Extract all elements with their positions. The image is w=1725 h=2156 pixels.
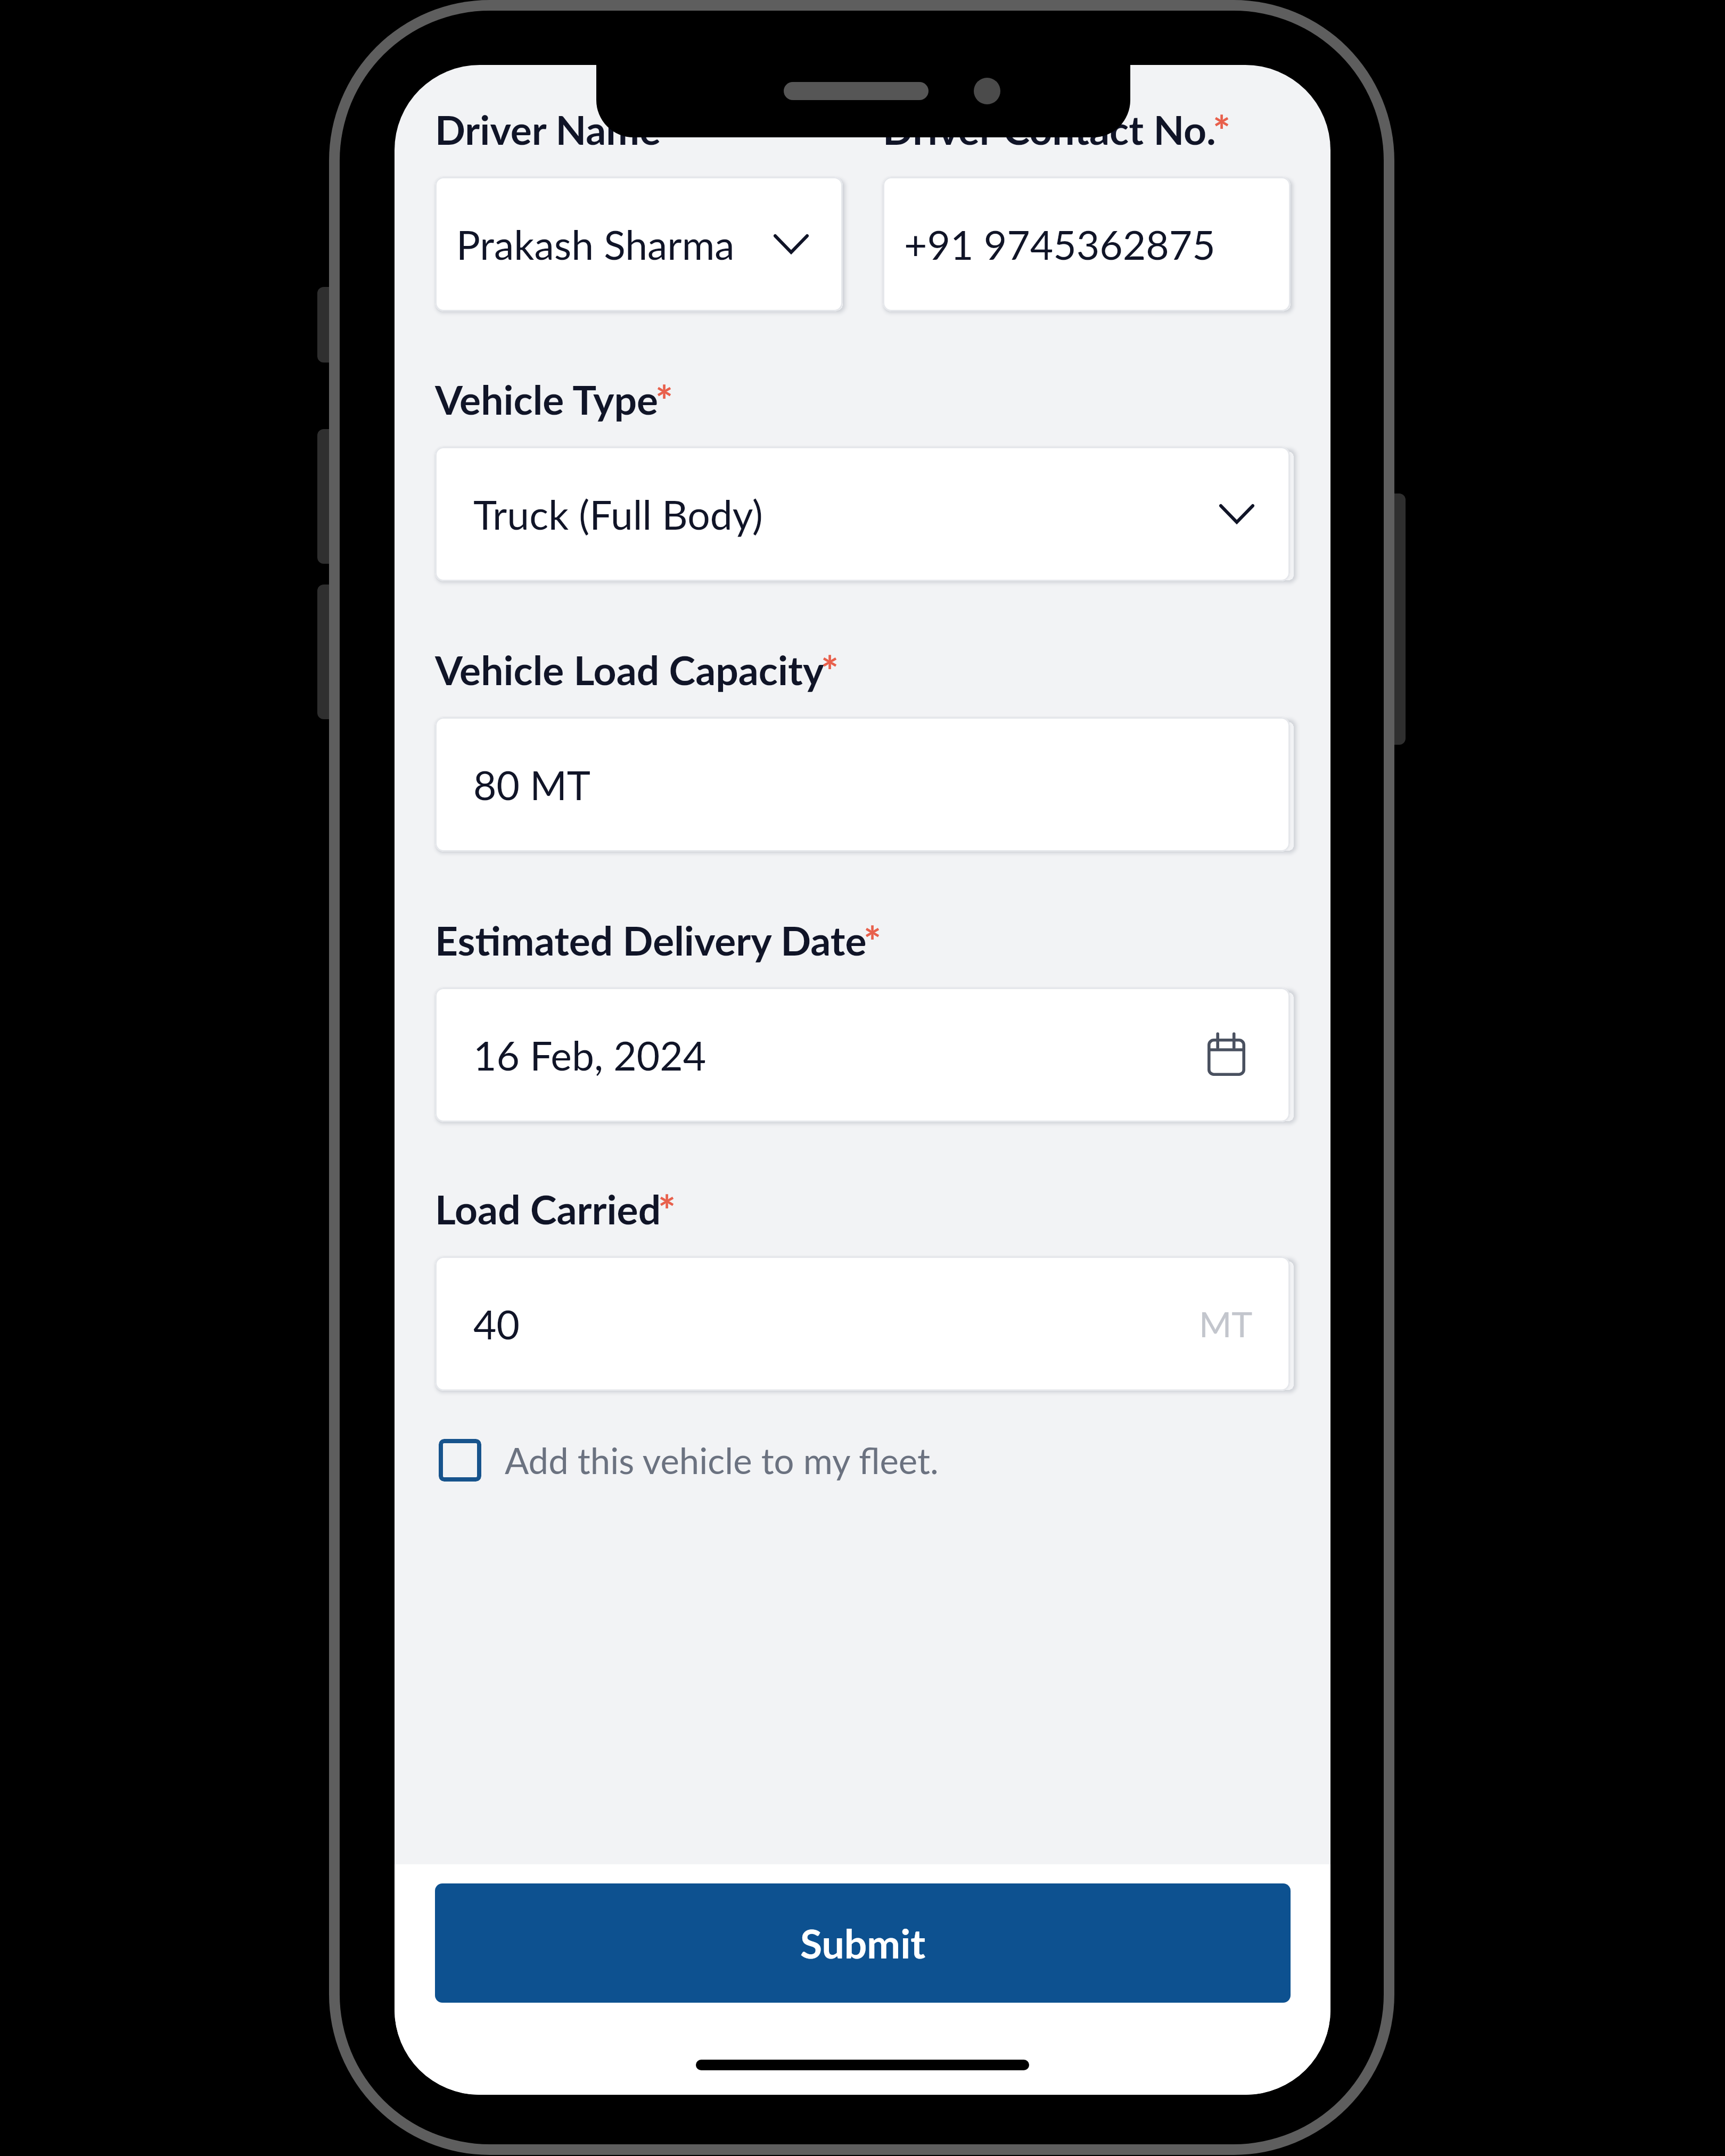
staticText: * bbox=[864, 916, 882, 966]
staticText: * bbox=[821, 646, 839, 696]
other: Open dropdown bbox=[774, 234, 809, 254]
button[interactable]: 40 bbox=[435, 1256, 1290, 1391]
staticText: Prakash Sharma bbox=[456, 220, 735, 268]
button[interactable]: Add this vehicle to my fleet. bbox=[439, 1435, 939, 1486]
staticText: Driver Contact No. bbox=[883, 105, 1216, 153]
button[interactable]: +91 9745362875 bbox=[883, 177, 1291, 311]
staticText: 80 MT bbox=[473, 761, 591, 809]
staticText: Add this vehicle to my fleet. bbox=[505, 1439, 939, 1482]
staticText: +91 9745362875 bbox=[904, 220, 1215, 268]
staticText: * bbox=[1213, 105, 1231, 155]
button[interactable]: 16 Feb, 2024 bbox=[435, 988, 1290, 1122]
staticText: Estimated Delivery Date bbox=[435, 916, 867, 964]
staticText: Submit bbox=[800, 1919, 926, 1967]
staticText: 16 Feb, 2024 bbox=[473, 1031, 707, 1079]
staticText: MT bbox=[1199, 1303, 1253, 1345]
button[interactable]: Truck (Full Body) bbox=[435, 447, 1290, 581]
button[interactable]: Prakash Sharma bbox=[435, 177, 843, 311]
other: Pick date bbox=[1207, 1034, 1245, 1076]
button[interactable]: 80 MT bbox=[435, 717, 1290, 852]
staticText: 40 bbox=[473, 1300, 520, 1348]
staticText: * bbox=[658, 1185, 676, 1235]
staticText: Truck (Full Body) bbox=[473, 490, 763, 538]
staticText: Load Carried bbox=[435, 1185, 661, 1233]
button[interactable]: Submit bbox=[435, 1883, 1291, 2003]
staticText: * bbox=[655, 375, 673, 425]
staticText: Driver Name bbox=[435, 105, 661, 153]
staticText: Vehicle Load Capacity bbox=[435, 646, 824, 694]
other: Open dropdown bbox=[1219, 504, 1254, 524]
staticText: Vehicle Type bbox=[435, 375, 659, 423]
